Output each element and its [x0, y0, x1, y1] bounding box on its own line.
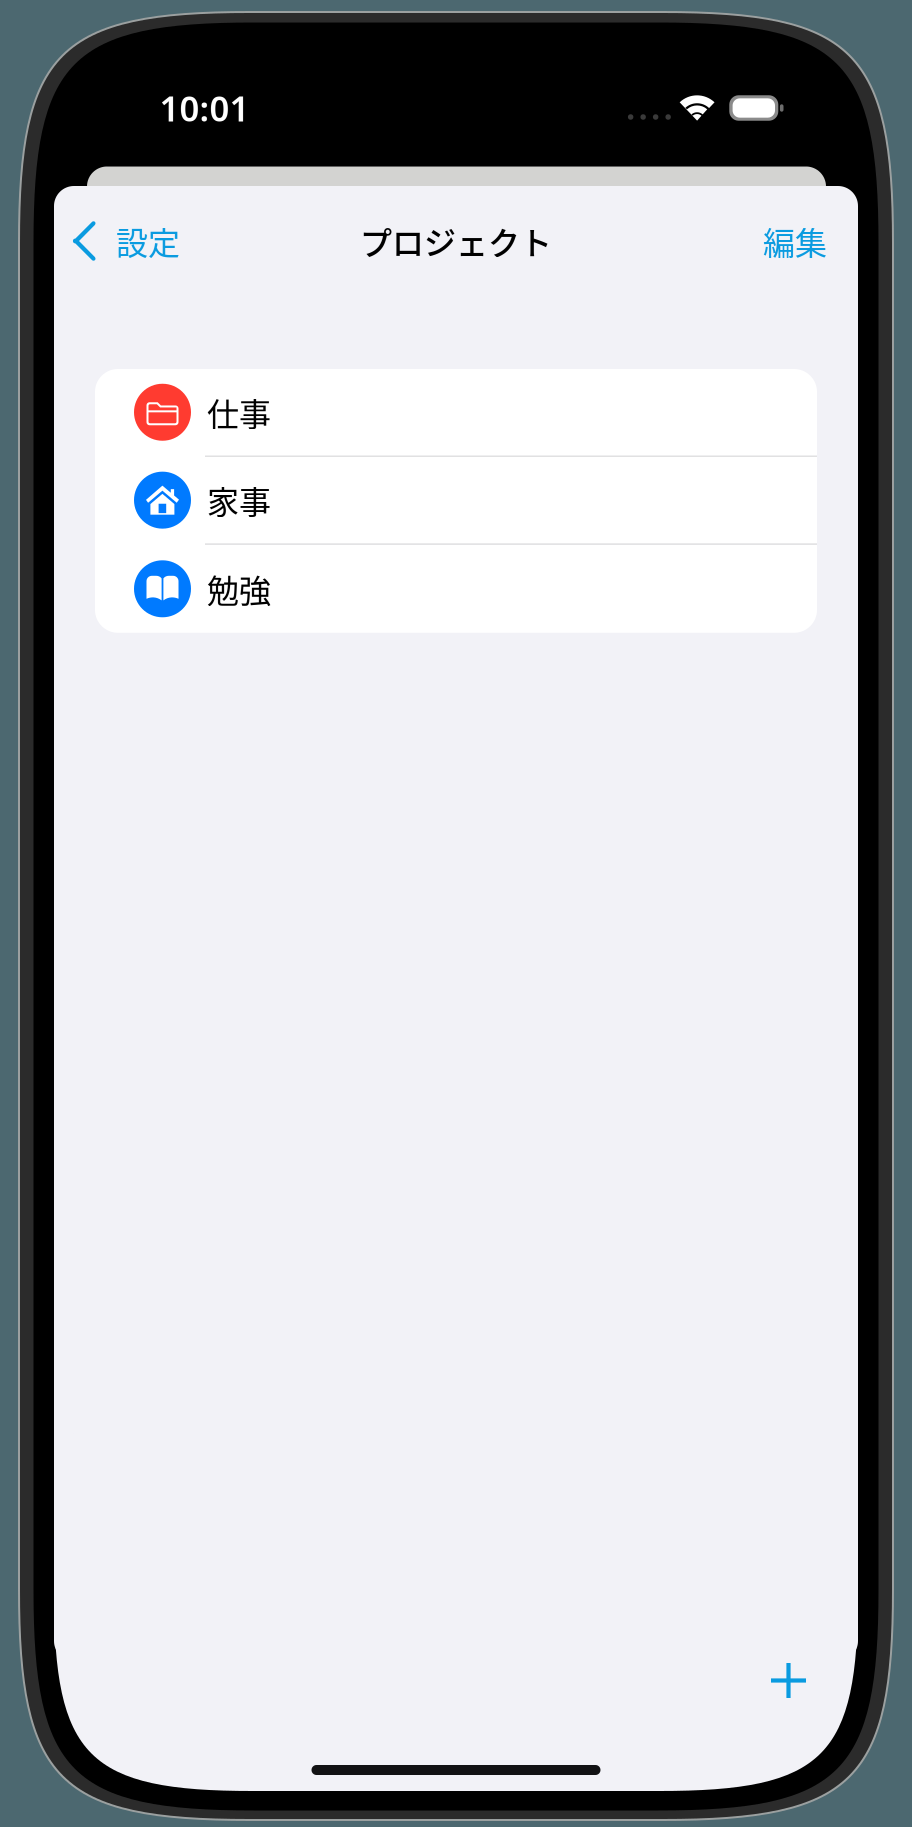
button[interactable]: 設定	[54, 208, 180, 274]
button[interactable]: 勉強	[95, 545, 817, 633]
staticText: 家事	[207, 477, 271, 523]
button[interactable]: 編集	[763, 208, 858, 274]
staticText: 10:01	[159, 85, 249, 131]
staticText: 勉強	[207, 566, 271, 612]
staticText: 編集	[763, 218, 827, 264]
staticText: プロジェクト	[360, 218, 552, 264]
button[interactable]: Add project	[754, 1646, 823, 1715]
button[interactable]: 仕事	[95, 369, 817, 457]
staticText: 設定	[116, 218, 180, 264]
button[interactable]: 家事	[95, 457, 817, 545]
staticText: 仕事	[207, 389, 271, 435]
